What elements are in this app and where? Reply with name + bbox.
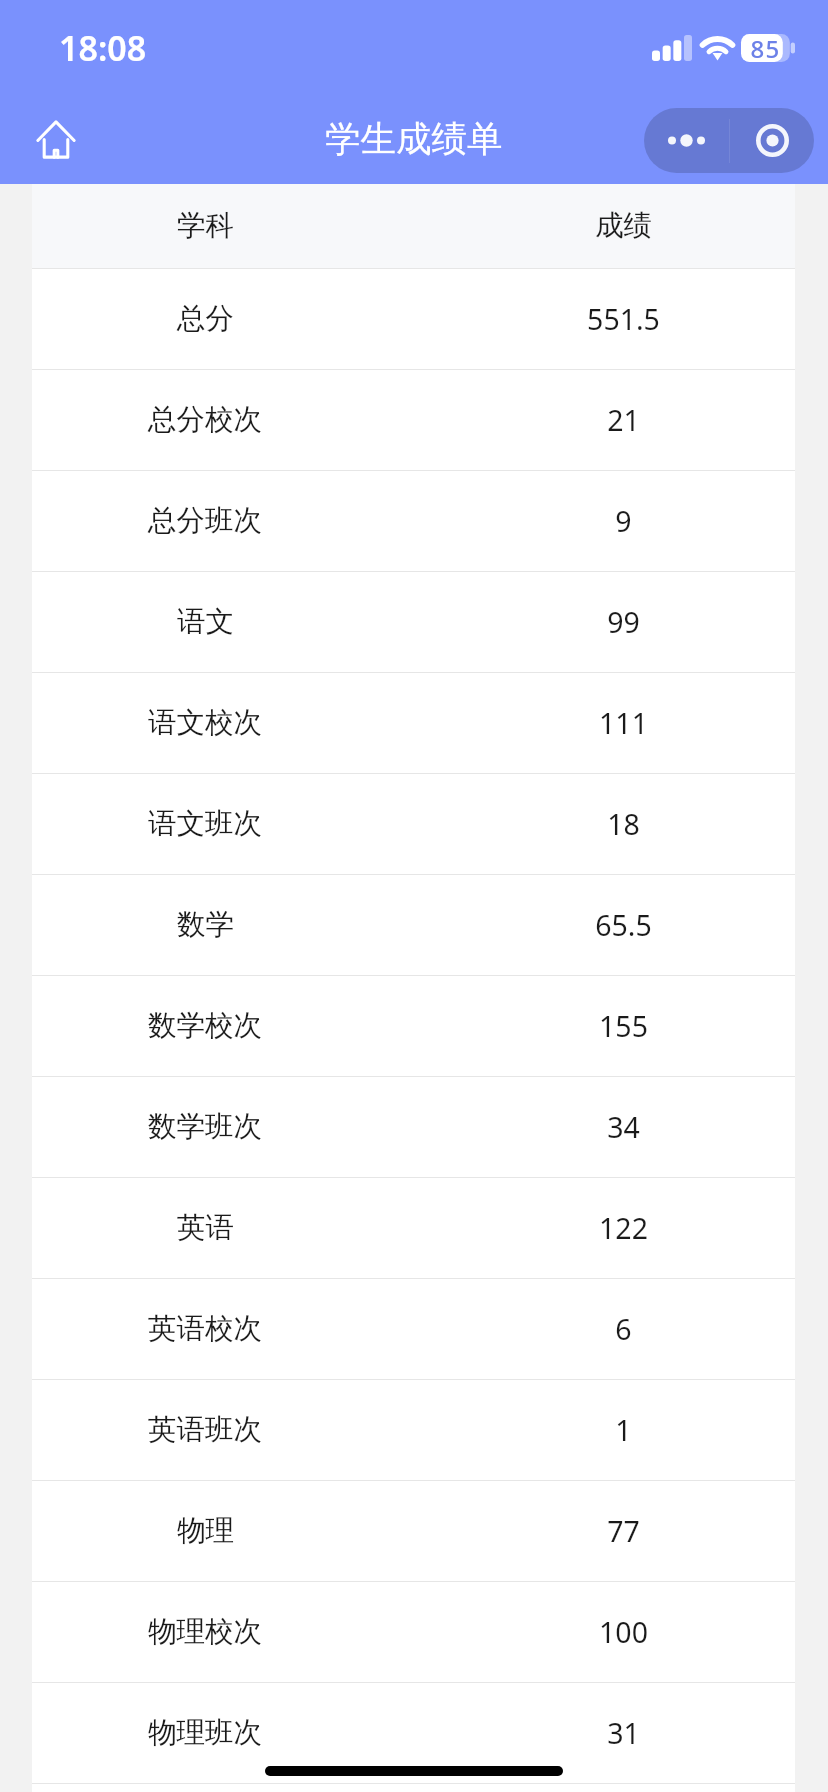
staticText: 18 [607,805,640,844]
staticText: 语文 [177,604,234,640]
staticText: 18:08 [59,25,147,71]
staticText: 成绩 [595,208,652,244]
button[interactable]: 语文校次 [32,673,795,773]
button[interactable]: 英语校次 [32,1279,795,1379]
staticText: 99 [607,603,640,642]
staticText: 31 [607,1714,640,1753]
button[interactable]: 总分班次 [32,471,795,571]
staticText: 122 [599,1209,648,1248]
staticText: 111 [599,704,648,743]
button[interactable]: 总分校次 [32,370,795,470]
button[interactable]: 数学 [32,875,795,975]
staticText: 34 [607,1108,640,1147]
button[interactable]: 物理班次 [32,1683,795,1783]
staticText: 物理校次 [148,1614,262,1650]
button[interactable]: 英语 [32,1178,795,1278]
button[interactable]: 物理 [32,1481,795,1581]
staticText: 9 [615,502,632,541]
staticText: 物理班次 [148,1715,262,1751]
staticText: 数学班次 [148,1109,262,1145]
staticText: 英语校次 [148,1311,262,1347]
staticText: 1 [615,1411,632,1450]
staticText: 6 [615,1310,632,1349]
staticText: 155 [599,1007,648,1046]
button[interactable]: More options [644,108,729,173]
staticText: 21 [607,401,640,440]
staticText: 总分班次 [148,503,262,539]
button[interactable]: 语文 [32,572,795,672]
staticText: 551.5 [587,300,660,339]
staticText: 语文班次 [148,806,262,842]
staticText: 英语 [177,1210,234,1246]
staticText: 学生成绩单 [325,117,503,162]
button[interactable]: 数学校次 [32,976,795,1076]
staticText: 65.5 [595,906,652,945]
staticText: 100 [599,1613,648,1652]
staticText: 语文校次 [148,705,262,741]
button[interactable]: 语文班次 [32,774,795,874]
staticText: 77 [607,1512,640,1551]
button[interactable]: Home [20,103,92,175]
staticText: 数学校次 [148,1008,262,1044]
staticText: 物理 [177,1513,234,1549]
button[interactable]: 数学班次 [32,1077,795,1177]
staticText: 总分 [177,301,234,337]
button[interactable]: Close mini program [730,108,814,173]
button[interactable]: 英语班次 [32,1380,795,1480]
staticText: 数学 [177,907,234,943]
staticText: 85 [741,32,790,60]
button[interactable]: 总分 [32,269,795,369]
staticText: 英语班次 [148,1412,262,1448]
staticText: 学科 [177,208,234,244]
button[interactable]: 物理校次 [32,1582,795,1682]
staticText: 总分校次 [148,402,262,438]
